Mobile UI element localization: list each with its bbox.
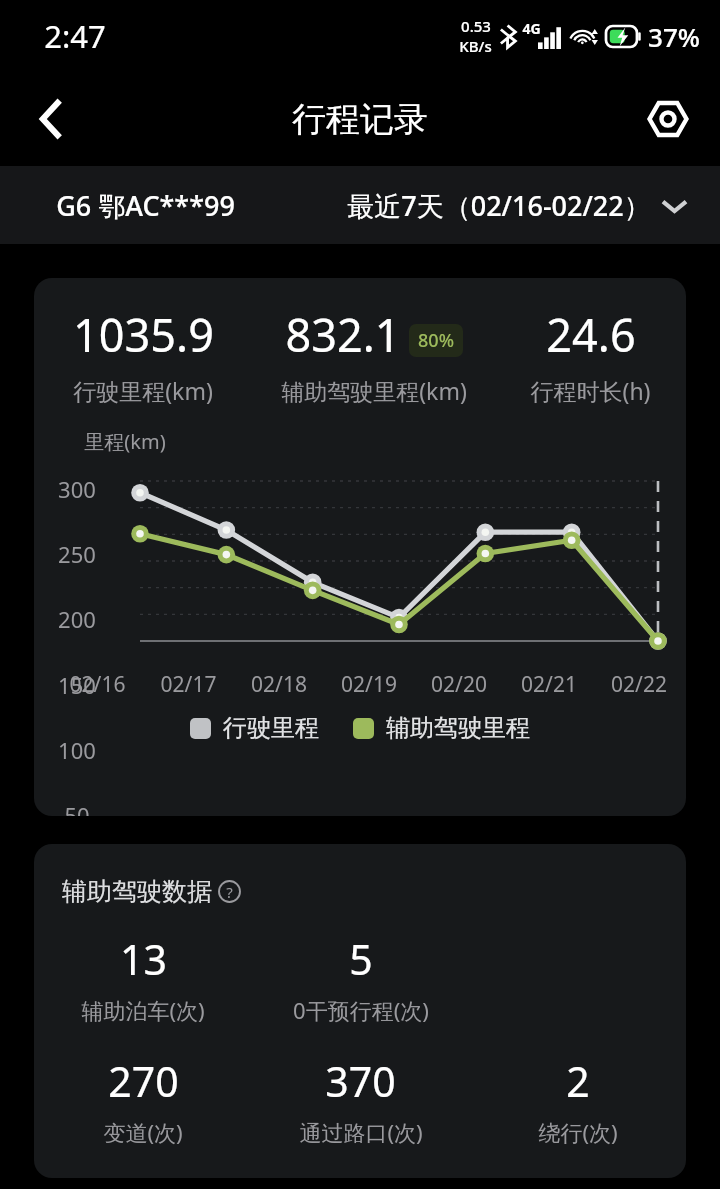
staticText: KB/s — [459, 36, 492, 56]
staticText: 行程记录 — [292, 98, 428, 141]
staticText: 辅助泊车(次) — [81, 995, 205, 1025]
button[interactable]: G6 鄂AC***99 — [56, 187, 235, 224]
button[interactable]: Settings — [636, 87, 700, 151]
button[interactable]: 辅助驾驶数据 — [62, 876, 241, 907]
button[interactable]: 最近7天（02/16-02/22） — [347, 187, 686, 224]
staticText: 02/22 — [594, 670, 684, 699]
staticText: 100 — [34, 735, 120, 765]
staticText: 02/17 — [143, 670, 234, 699]
staticText: 200 — [34, 604, 120, 634]
staticText: 13 — [120, 931, 167, 987]
staticText: 里程(km) — [84, 428, 166, 455]
staticText: 5 — [349, 931, 373, 987]
staticText: 02/16 — [52, 670, 143, 699]
button[interactable]: Back — [20, 87, 84, 151]
staticText: 02/21 — [504, 670, 594, 699]
staticText: 行程时长(h) — [530, 375, 651, 406]
staticText: 通过路口(次) — [299, 1117, 423, 1147]
staticText: 80% — [418, 328, 454, 353]
staticText: 300 — [34, 474, 120, 504]
staticText: 4G — [522, 19, 541, 38]
staticText: 行驶里程(km) — [73, 375, 213, 406]
staticText: 绕行(次) — [538, 1117, 618, 1147]
staticText: 150 — [34, 670, 120, 700]
staticText: ? — [226, 882, 233, 902]
staticText: G6 鄂AC***99 — [56, 187, 235, 224]
staticText: 24.6 — [546, 304, 636, 365]
staticText: 370 — [325, 1053, 396, 1109]
staticText: 270 — [108, 1053, 179, 1109]
staticText: 02/18 — [234, 670, 324, 699]
staticText: 37% — [648, 19, 700, 54]
staticText: 辅助驾驶里程(km) — [281, 375, 467, 406]
staticText: 2:47 — [44, 15, 106, 57]
staticText: 最近7天（02/16-02/22） — [347, 187, 651, 224]
staticText: 1035.9 — [73, 304, 214, 365]
staticText: 02/19 — [324, 670, 414, 699]
staticText: 辅助驾驶数据 — [62, 876, 212, 907]
staticText: 变道(次) — [103, 1117, 183, 1147]
staticText: 250 — [34, 539, 120, 569]
staticText: 辅助驾驶里程 — [386, 713, 530, 743]
staticText: 832.1 — [285, 304, 401, 365]
staticText: 行驶里程 — [223, 713, 319, 743]
staticText: 02/20 — [414, 670, 504, 699]
staticText: 2 — [566, 1053, 590, 1109]
staticText: 0干预行程(次) — [293, 995, 429, 1025]
staticText: 0.53 — [461, 16, 491, 36]
staticText: 50 — [34, 800, 120, 816]
